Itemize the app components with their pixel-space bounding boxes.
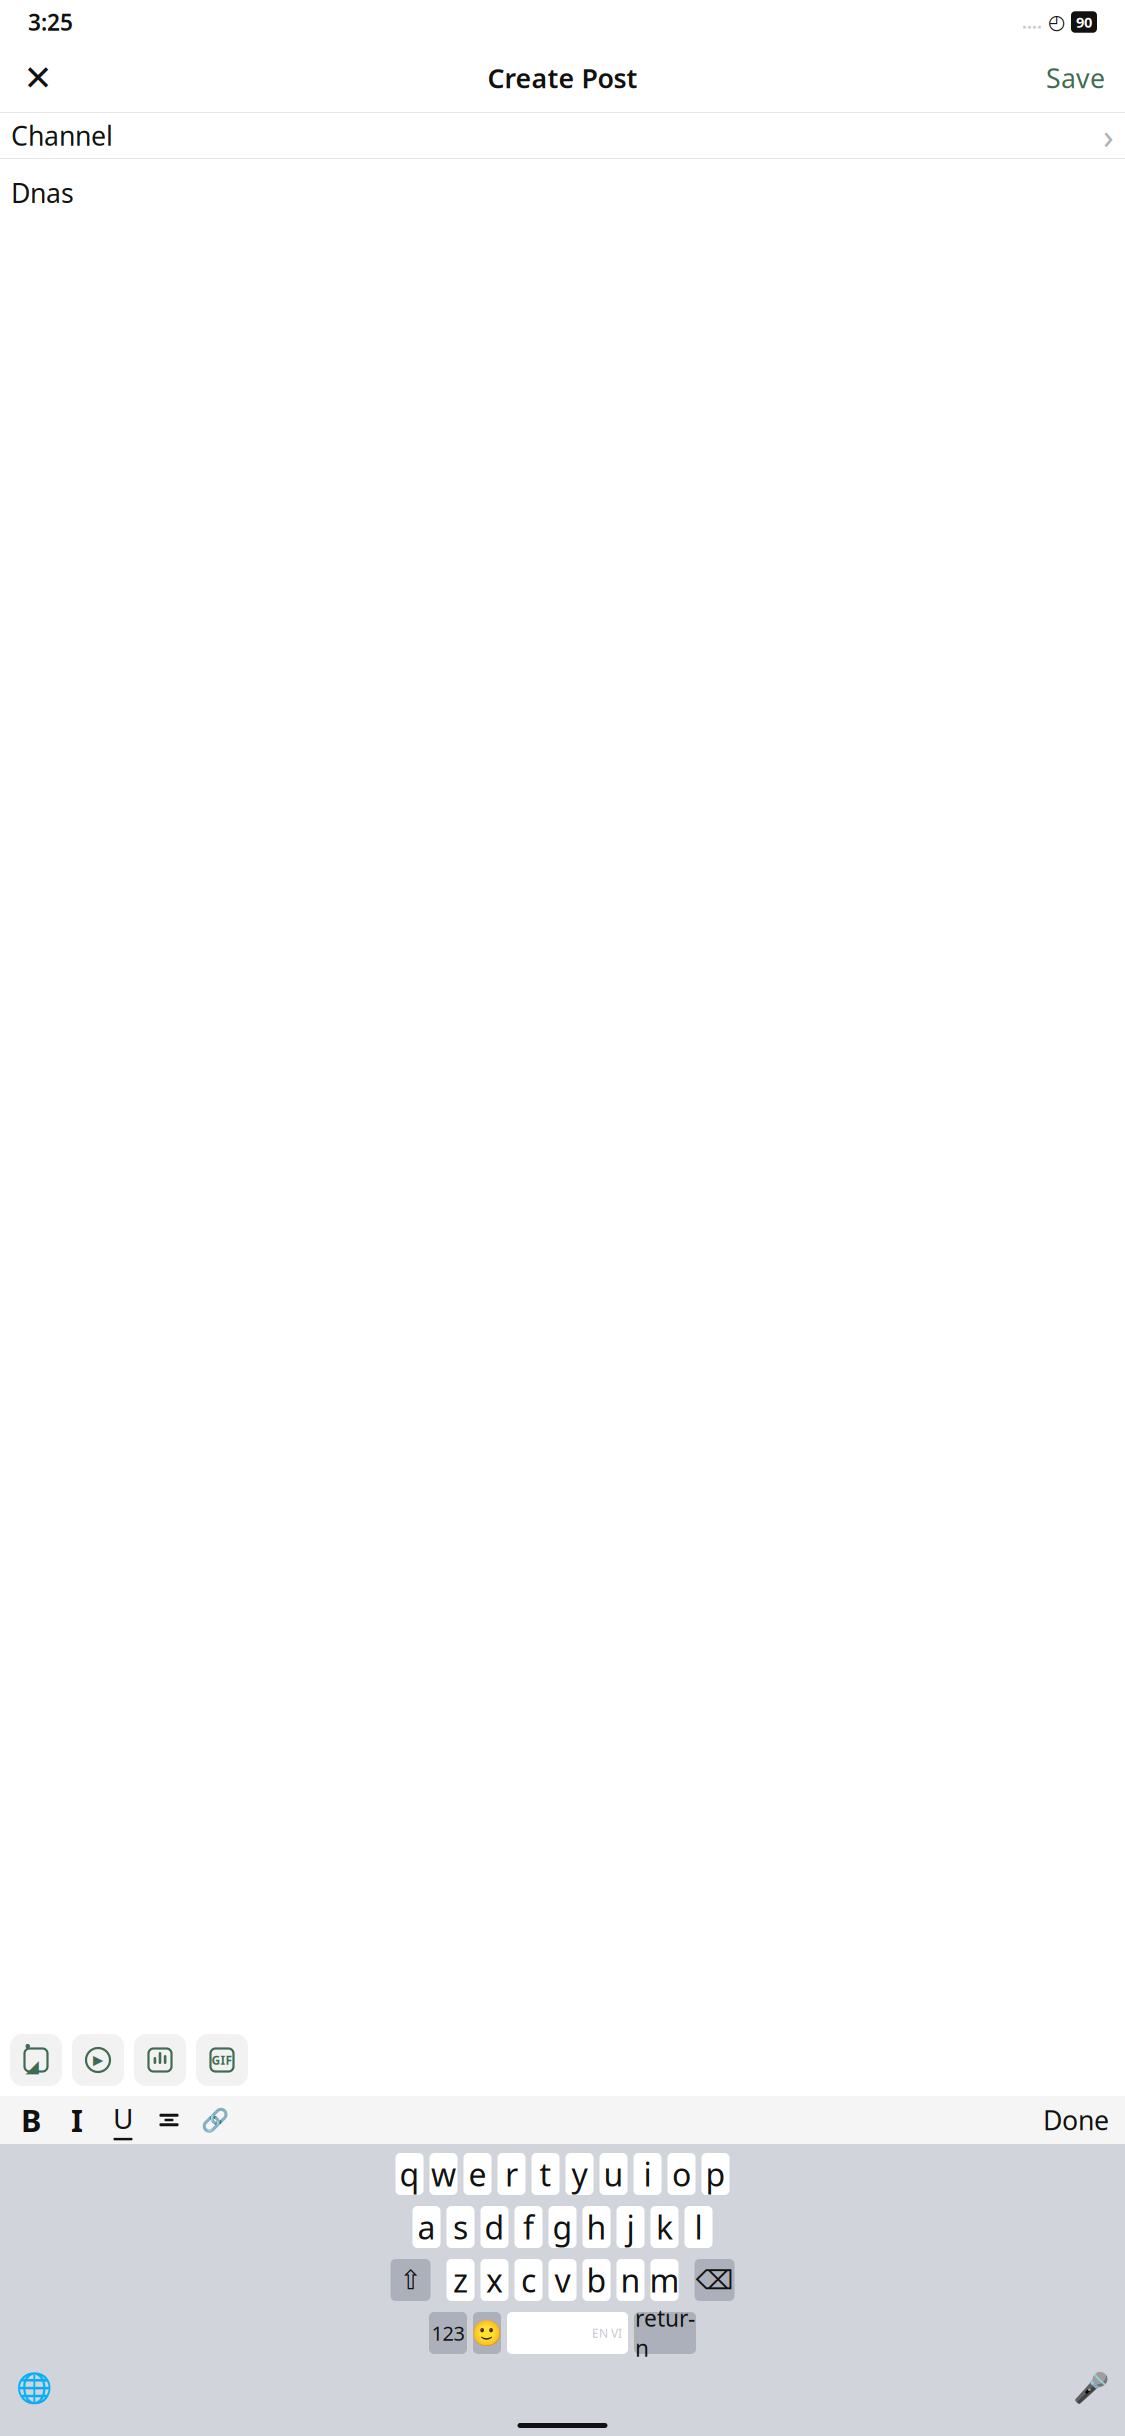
- staticText: Done: [1043, 2102, 1109, 2138]
- button[interactable]: Dictation: [1069, 2368, 1113, 2408]
- button[interactable]: Italic: [54, 2098, 100, 2142]
- button[interactable]: v: [548, 2259, 576, 2301]
- staticText: Dnas: [11, 175, 74, 210]
- button[interactable]: Done: [1035, 2098, 1117, 2142]
- staticText: ▶: [93, 2052, 103, 2067]
- button[interactable]: Insert link: [192, 2098, 238, 2142]
- staticText: 🌐: [15, 2371, 52, 2405]
- staticText: l: [694, 2206, 702, 2248]
- staticText: h: [586, 2206, 606, 2248]
- staticText: o: [672, 2153, 691, 2195]
- button[interactable]: s: [446, 2206, 474, 2248]
- staticText: 90: [1076, 12, 1092, 32]
- staticText: B: [21, 2100, 41, 2140]
- button[interactable]: Next keyboard: [12, 2368, 56, 2408]
- button[interactable]: 🙂: [473, 2312, 501, 2354]
- staticText: w: [431, 2153, 456, 2195]
- button[interactable]: b: [582, 2259, 610, 2301]
- button[interactable]: a: [412, 2206, 440, 2248]
- button[interactable]: m: [650, 2259, 678, 2301]
- staticText: Channel: [11, 118, 113, 153]
- button[interactable]: Add photo: [10, 2034, 62, 2086]
- button[interactable]: Add video: [72, 2034, 124, 2086]
- button[interactable]: p: [701, 2153, 729, 2195]
- button[interactable]: g: [548, 2206, 576, 2248]
- button[interactable]: z: [446, 2259, 474, 2301]
- staticText: EN VI: [592, 2325, 622, 2341]
- staticText: 🙂: [471, 2318, 503, 2347]
- staticText: v: [554, 2259, 570, 2301]
- button[interactable]: Underline: [100, 2098, 146, 2142]
- staticText: ◢: [25, 2056, 38, 2076]
- staticText: m: [649, 2259, 679, 2301]
- button[interactable]: e: [463, 2153, 491, 2195]
- button[interactable]: h: [582, 2206, 610, 2248]
- button[interactable]: x: [480, 2259, 508, 2301]
- staticText: 123: [431, 2320, 464, 2346]
- staticText: GIF: [211, 2052, 232, 2068]
- staticText: return: [635, 2303, 695, 2363]
- staticText: d: [484, 2206, 504, 2248]
- staticText: x: [486, 2259, 503, 2301]
- button[interactable]: u: [599, 2153, 627, 2195]
- staticText: k: [656, 2206, 673, 2248]
- button[interactable]: d: [480, 2206, 508, 2248]
- button[interactable]: Add poll: [134, 2034, 186, 2086]
- staticText: n: [620, 2259, 640, 2301]
- staticText: Save: [1046, 60, 1105, 96]
- button[interactable]: Close: [14, 54, 62, 102]
- button[interactable]: l: [684, 2206, 712, 2248]
- staticText: r: [505, 2153, 518, 2195]
- button[interactable]: k: [650, 2206, 678, 2248]
- staticText: i: [643, 2153, 651, 2195]
- button[interactable]: r: [497, 2153, 525, 2195]
- button[interactable]: i: [633, 2153, 661, 2195]
- button[interactable]: o: [667, 2153, 695, 2195]
- button[interactable]: c: [514, 2259, 542, 2301]
- staticText: ⌫: [695, 2265, 733, 2295]
- staticText: g: [552, 2206, 572, 2248]
- button[interactable]: j: [616, 2206, 644, 2248]
- staticText: ....: [1022, 10, 1042, 33]
- staticText: ◴: [1048, 11, 1065, 33]
- staticText: j: [626, 2206, 634, 2248]
- staticText: b: [586, 2259, 606, 2301]
- staticText: 🔗: [201, 2107, 229, 2133]
- staticText: ⇧: [399, 2265, 421, 2295]
- staticText: ›: [1103, 112, 1114, 158]
- button[interactable]: space: [507, 2312, 628, 2354]
- staticText: y: [571, 2153, 587, 2195]
- staticText: q: [399, 2153, 419, 2195]
- button[interactable]: ⇧: [390, 2259, 430, 2301]
- staticText: a: [417, 2206, 435, 2248]
- button[interactable]: Save: [1040, 54, 1111, 102]
- button[interactable]: return: [634, 2312, 696, 2354]
- staticText: c: [521, 2259, 536, 2301]
- button[interactable]: f: [514, 2206, 542, 2248]
- button[interactable]: y: [565, 2153, 593, 2195]
- staticText: f: [523, 2206, 534, 2248]
- staticText: ✕: [23, 58, 52, 98]
- button[interactable]: t: [531, 2153, 559, 2195]
- button[interactable]: n: [616, 2259, 644, 2301]
- staticText: s: [453, 2206, 468, 2248]
- staticText: e: [468, 2153, 486, 2195]
- button[interactable]: q: [395, 2153, 423, 2195]
- button[interactable]: w: [429, 2153, 457, 2195]
- staticText: I: [71, 2100, 83, 2140]
- button[interactable]: Channel: [0, 113, 1125, 158]
- staticText: Create Post: [487, 60, 637, 96]
- button[interactable]: 123: [429, 2312, 467, 2354]
- staticText: z: [453, 2259, 468, 2301]
- button[interactable]: Strikethrough: [146, 2098, 192, 2142]
- button[interactable]: Add GIF: [196, 2034, 248, 2086]
- staticText: 3:25: [28, 7, 73, 37]
- button[interactable]: Bold: [8, 2098, 54, 2142]
- button[interactable]: ⌫: [694, 2259, 734, 2301]
- staticText: u: [603, 2153, 623, 2195]
- staticText: 🎤: [1072, 2371, 1109, 2405]
- staticText: p: [705, 2153, 725, 2195]
- staticText: t: [539, 2153, 551, 2195]
- staticText: U: [113, 2100, 133, 2137]
